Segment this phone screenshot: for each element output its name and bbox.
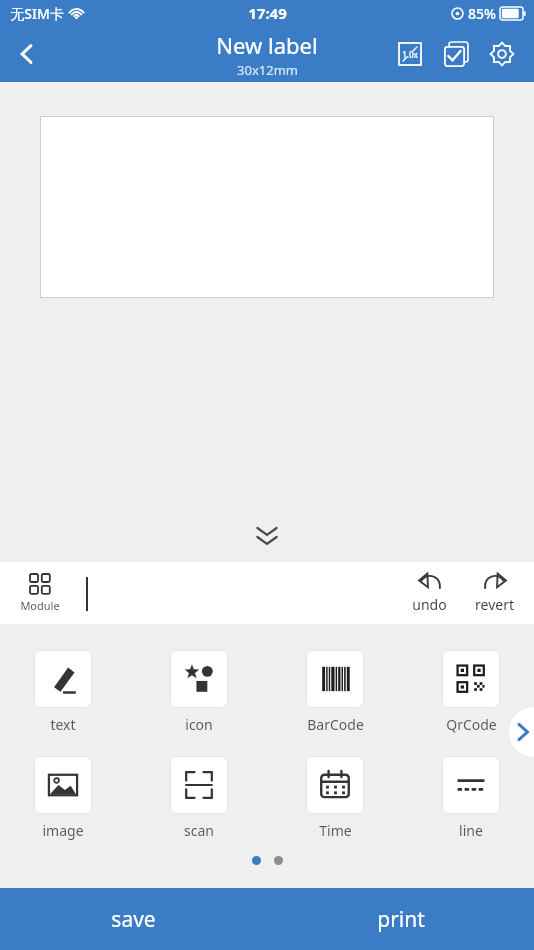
staticText: 85% bbox=[468, 4, 496, 23]
staticText: icon bbox=[185, 715, 213, 734]
button[interactable]: Module bbox=[16, 574, 64, 613]
button[interactable]: undo bbox=[410, 572, 449, 614]
staticText: text bbox=[50, 715, 76, 734]
button[interactable]: save bbox=[0, 888, 267, 950]
staticText: 1.0x bbox=[402, 49, 418, 60]
staticText: line bbox=[459, 821, 483, 840]
button[interactable]: Next page bbox=[509, 707, 534, 757]
button[interactable]: scan bbox=[170, 756, 228, 840]
staticText: scan bbox=[184, 821, 214, 840]
button[interactable]: text bbox=[34, 650, 92, 734]
staticText: image bbox=[42, 821, 84, 840]
staticText: 30x12mm bbox=[237, 61, 298, 79]
button[interactable]: line bbox=[442, 756, 500, 840]
button[interactable]: image bbox=[34, 756, 92, 840]
staticText: print bbox=[377, 905, 425, 934]
staticText: 无SIM卡 bbox=[10, 4, 64, 23]
button[interactable]: Zoom 1.0x bbox=[392, 36, 428, 72]
staticText: save bbox=[111, 905, 156, 934]
staticText: undo bbox=[412, 595, 447, 614]
button[interactable]: print bbox=[267, 888, 534, 950]
button[interactable]: Back bbox=[0, 27, 54, 81]
button[interactable]: icon bbox=[170, 650, 228, 734]
button[interactable]: Select all bbox=[438, 36, 474, 72]
button[interactable]: Settings bbox=[484, 36, 520, 72]
staticText: 17:49 bbox=[248, 3, 287, 23]
staticText: Module bbox=[20, 598, 60, 613]
staticText: revert bbox=[475, 595, 514, 614]
button[interactable]: BarCode bbox=[306, 650, 364, 734]
staticText: BarCode bbox=[307, 715, 364, 734]
staticText: Time bbox=[319, 821, 352, 840]
staticText: New label bbox=[216, 30, 318, 60]
button[interactable]: Time bbox=[306, 756, 364, 840]
button[interactable]: revert bbox=[473, 572, 516, 614]
staticText: QrCode bbox=[446, 715, 497, 734]
button[interactable]: Expand bbox=[239, 514, 295, 554]
button[interactable]: QrCode bbox=[442, 650, 500, 734]
